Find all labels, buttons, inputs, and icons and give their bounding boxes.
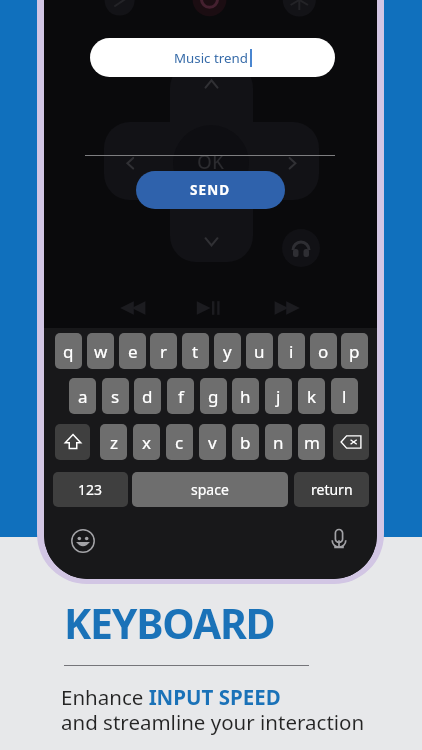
staticText: OK (197, 149, 224, 171)
staticText: s (111, 385, 120, 408)
button[interactable]: return (294, 472, 369, 507)
staticText: return (311, 480, 353, 499)
staticText: Music trend (174, 49, 248, 67)
button[interactable]: r (150, 333, 177, 369)
button[interactable]: k (298, 378, 325, 414)
staticText: d (142, 385, 153, 408)
button[interactable]: Voice input (323, 524, 355, 556)
button[interactable]: m (298, 424, 325, 460)
staticText: u (254, 340, 265, 363)
button[interactable]: Music trend (90, 38, 335, 77)
button[interactable]: p (341, 333, 368, 369)
staticText: h (240, 385, 251, 408)
button[interactable]: Emoji (67, 525, 99, 557)
button[interactable]: d (134, 378, 161, 414)
staticText: z (110, 431, 118, 454)
button[interactable]: c (166, 424, 193, 460)
button[interactable]: j (265, 378, 292, 414)
button[interactable]: q (55, 333, 82, 369)
button[interactable]: o (310, 333, 337, 369)
staticText: KEYBOARD (64, 595, 275, 651)
staticText: p (349, 340, 360, 363)
staticText: c (175, 431, 184, 454)
staticText: r (160, 340, 168, 363)
button[interactable]: b (232, 424, 259, 460)
staticText: v (208, 431, 217, 454)
button[interactable]: h (232, 378, 259, 414)
staticText: y (223, 340, 232, 363)
staticText: space (191, 480, 229, 499)
button[interactable]: space (132, 472, 288, 507)
button[interactable]: v (199, 424, 226, 460)
button[interactable]: s (102, 378, 129, 414)
staticText: e (128, 340, 138, 363)
staticText: Enhance INPUT SPEED and streamline your … (61, 683, 365, 736)
button[interactable]: t (182, 333, 209, 369)
button[interactable]: i (278, 333, 305, 369)
staticText: i (289, 340, 294, 363)
button[interactable]: w (87, 333, 114, 369)
button[interactable]: e (119, 333, 146, 369)
button[interactable]: SEND (136, 171, 285, 209)
button[interactable]: x (133, 424, 160, 460)
staticText: SEND (190, 181, 231, 199)
button[interactable]: Backspace (333, 424, 369, 460)
button[interactable]: y (214, 333, 241, 369)
button[interactable]: n (265, 424, 292, 460)
staticText: o (318, 340, 329, 363)
staticText: b (240, 431, 251, 454)
button[interactable]: g (200, 378, 227, 414)
staticText: m (304, 431, 320, 454)
staticText: f (178, 385, 184, 408)
button[interactable]: z (100, 424, 127, 460)
staticText: a (78, 385, 88, 408)
staticText: n (273, 431, 284, 454)
staticText: t (192, 340, 199, 363)
staticText: k (307, 385, 317, 408)
button[interactable]: 123 (53, 472, 128, 507)
staticText: w (94, 340, 108, 363)
staticText: q (63, 340, 74, 363)
staticText: j (276, 385, 281, 408)
button[interactable]: a (69, 378, 96, 414)
button[interactable]: Shift (55, 424, 90, 460)
button[interactable]: f (167, 378, 194, 414)
staticText: g (208, 385, 219, 408)
button[interactable]: u (246, 333, 273, 369)
staticText: 123 (78, 480, 103, 499)
button[interactable]: l (331, 378, 358, 414)
staticText: x (142, 431, 151, 454)
staticText: l (342, 385, 347, 408)
